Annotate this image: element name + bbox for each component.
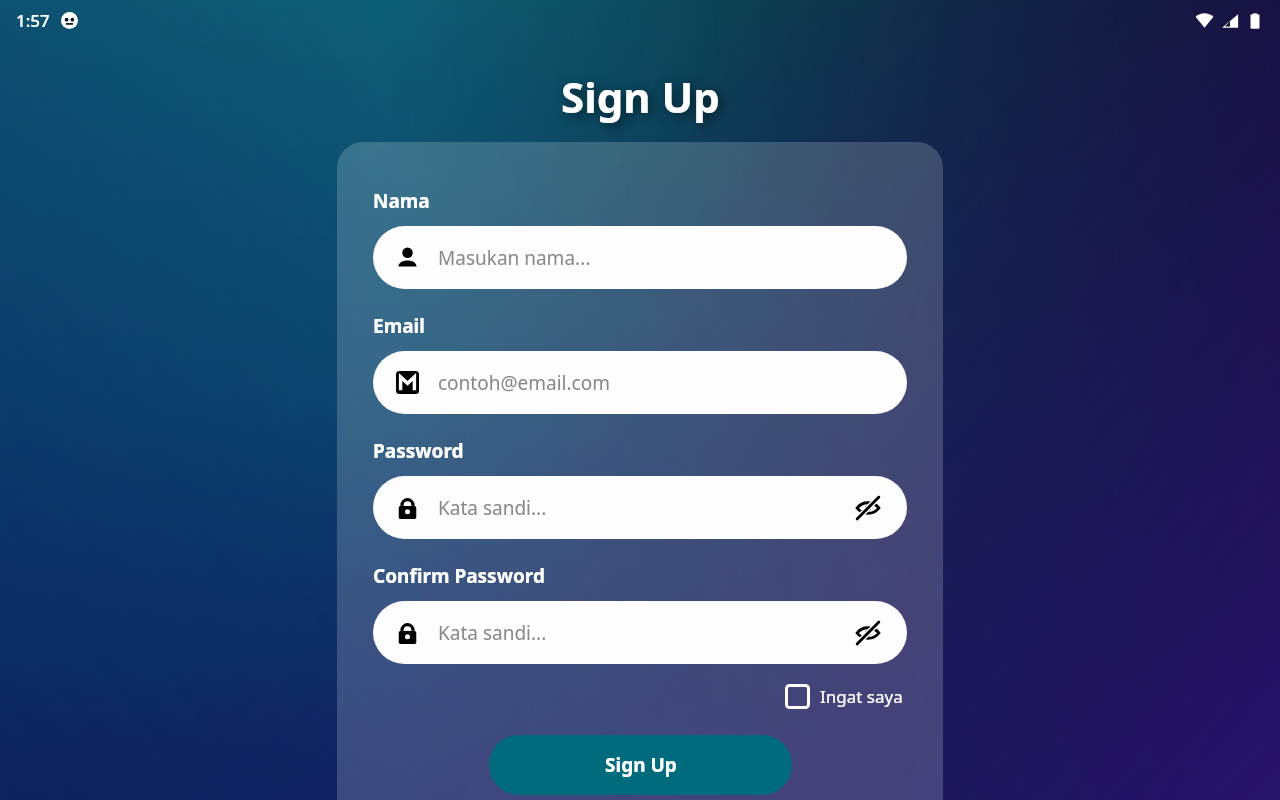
button[interactable]: Name [373,226,907,289]
other: Name [395,245,420,270]
staticText: Sign Up [605,752,677,778]
other: Email [395,370,420,395]
other: Confirm password [395,620,420,645]
staticText: 1:57 [16,9,50,32]
button[interactable]: Toggle password visibility [851,616,885,650]
button[interactable]: Password [373,476,907,539]
other: Password [395,495,420,520]
staticText: Sign Up [561,68,720,125]
button[interactable]: Email [373,351,907,414]
button[interactable]: Toggle password visibility [851,491,885,525]
button[interactable]: Sign Up [489,735,792,795]
button[interactable]: Ingat saya [781,680,907,713]
staticText: Nama [373,188,430,214]
staticText: Confirm Password [373,563,545,589]
staticText: Ingat saya [820,685,903,708]
staticText: Password [373,438,464,464]
staticText: Email [373,313,425,339]
staticText: Masukan nama... [438,245,591,271]
staticText: Kata sandi... [438,620,547,646]
staticText: Kata sandi... [438,495,547,521]
staticText: contoh@email.com [438,370,610,396]
button[interactable]: Confirm password [373,601,907,664]
